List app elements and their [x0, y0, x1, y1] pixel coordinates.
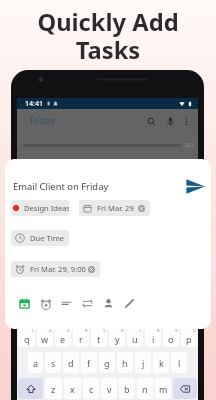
button[interactable]: Assign — [98, 293, 119, 314]
button[interactable]: g — [99, 352, 115, 373]
button[interactable]: Edit — [119, 293, 140, 314]
staticText: k — [159, 357, 164, 369]
staticText: 2 — [49, 327, 52, 333]
button[interactable]: z — [45, 378, 62, 399]
staticText: i — [152, 333, 155, 345]
staticText: Design Ideas — [24, 203, 69, 213]
staticText: Email Client on Friday — [13, 180, 109, 193]
staticText: Due Time — [30, 233, 65, 243]
staticText: 1 — [31, 327, 34, 333]
staticText: b — [124, 383, 130, 395]
staticText: 0/2 — [185, 141, 195, 149]
staticText: x — [70, 383, 75, 395]
button[interactable]: m — [155, 378, 171, 399]
staticText: Today — [29, 114, 56, 127]
staticText: 0 — [193, 327, 196, 333]
staticText: 3 — [67, 327, 70, 333]
staticText: n — [142, 383, 148, 395]
button[interactable]: p — [181, 326, 197, 347]
staticText: g — [104, 357, 110, 369]
button[interactable]: Repeat — [77, 293, 98, 314]
button[interactable]: t — [91, 326, 107, 347]
staticText: a — [33, 357, 39, 369]
staticText: j — [142, 357, 145, 369]
button[interactable]: a — [28, 352, 43, 373]
button[interactable]: Design Ideas — [11, 200, 69, 216]
button[interactable]: v — [101, 378, 117, 399]
staticText: l — [178, 357, 181, 369]
button[interactable]: Schedule — [14, 293, 35, 314]
staticText: 6 — [121, 327, 124, 333]
button[interactable]: Description — [56, 293, 77, 314]
button[interactable]: j — [135, 352, 151, 373]
staticText: p — [186, 333, 192, 345]
button[interactable]: y — [109, 326, 125, 347]
staticText: y — [115, 333, 120, 345]
staticText: Quickly Add Tasks — [0, 6, 216, 66]
button[interactable]: i — [145, 326, 161, 347]
staticText: f — [87, 357, 91, 369]
staticText: v — [107, 383, 112, 395]
staticText: h — [122, 357, 128, 369]
staticText: c — [89, 383, 94, 395]
button[interactable]: Search — [144, 114, 158, 128]
staticText: 4 — [85, 327, 88, 333]
staticText: Fri Mar. 29, 9:00 — [30, 264, 86, 274]
button[interactable]: Add task — [184, 175, 206, 197]
button[interactable]: r — [73, 326, 89, 347]
staticText: r — [79, 333, 83, 345]
button[interactable]: Backspace — [173, 378, 197, 399]
staticText: q — [24, 333, 30, 345]
staticText: d — [68, 357, 74, 369]
button[interactable]: x — [64, 378, 81, 399]
button[interactable]: Reminder — [35, 293, 56, 314]
staticText: 8 — [157, 327, 160, 333]
button[interactable]: q — [18, 326, 35, 347]
staticText: w — [41, 333, 49, 345]
staticText: u — [132, 333, 138, 345]
staticText: m — [159, 383, 168, 395]
staticText: 5 — [103, 327, 106, 333]
button[interactable]: d — [63, 352, 79, 373]
button[interactable]: More options — [180, 115, 192, 127]
staticText: 7 — [139, 327, 142, 333]
staticText: s — [51, 357, 56, 369]
staticText: o — [168, 333, 174, 345]
button[interactable]: s — [45, 352, 61, 373]
button[interactable]: Fri Mar. 29, 9:00 — [11, 261, 100, 277]
button[interactable]: w — [37, 326, 53, 347]
staticText: 14:41 — [25, 99, 43, 109]
button[interactable]: Shift — [18, 378, 43, 399]
button[interactable]: Due Time — [11, 230, 69, 246]
button[interactable]: l — [171, 352, 187, 373]
button[interactable]: Fri Mar. 29 — [79, 200, 150, 216]
button[interactable]: h — [117, 352, 133, 373]
button[interactable]: u — [127, 326, 143, 347]
button[interactable]: b — [119, 378, 135, 399]
staticText: 9 — [175, 327, 178, 333]
button[interactable]: o — [163, 326, 179, 347]
staticText: t — [97, 333, 101, 345]
button[interactable]: Voice input — [163, 114, 177, 128]
staticText: Fri Mar. 29 — [97, 203, 134, 213]
button[interactable]: c — [83, 378, 99, 399]
button[interactable]: k — [153, 352, 169, 373]
button[interactable]: e — [55, 326, 71, 347]
button[interactable]: n — [137, 378, 153, 399]
button[interactable]: f — [81, 352, 97, 373]
staticText: e — [60, 333, 66, 345]
staticText: z — [51, 383, 56, 395]
